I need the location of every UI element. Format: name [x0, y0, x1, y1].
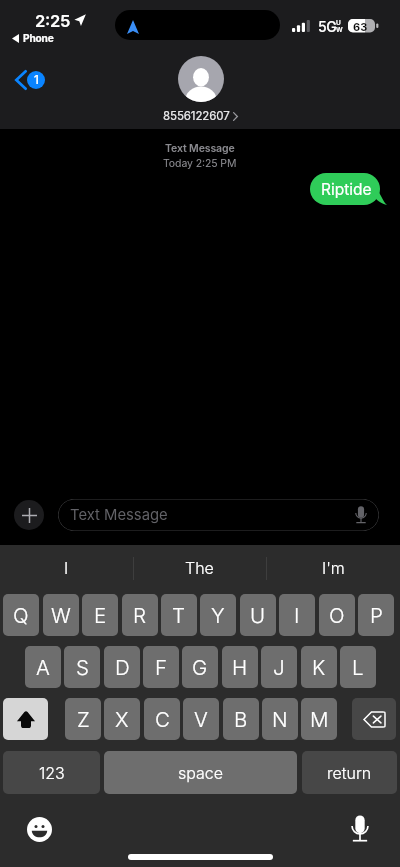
staticText: T	[172, 603, 186, 628]
staticText: Today 2:25 PM	[163, 157, 237, 170]
button[interactable]: U	[240, 594, 276, 636]
staticText: Phone	[23, 32, 54, 44]
button[interactable]: B	[223, 698, 259, 740]
button[interactable]: L	[340, 646, 376, 688]
staticText: W	[51, 603, 71, 628]
staticText: Q	[13, 603, 29, 628]
staticText: I'm	[322, 558, 345, 577]
staticText: space	[178, 763, 224, 782]
button[interactable]: D	[104, 646, 140, 688]
staticText: O	[329, 603, 345, 628]
staticText: Z	[77, 707, 90, 732]
button[interactable]: The	[133, 545, 266, 589]
button[interactable]: Dictation	[347, 816, 373, 842]
staticText: E	[94, 603, 107, 628]
button[interactable]: Shift	[3, 698, 48, 740]
button[interactable]: W	[43, 594, 79, 636]
staticText: 2:25	[35, 11, 70, 31]
staticText: B	[234, 707, 248, 732]
button[interactable]: space	[104, 751, 297, 794]
button[interactable]: K	[301, 646, 337, 688]
staticText: C	[155, 707, 170, 732]
staticText: U	[250, 603, 266, 628]
staticText: D	[115, 655, 130, 680]
button[interactable]: Back to Phone	[12, 32, 54, 44]
staticText: K	[312, 655, 326, 680]
button[interactable]: F	[143, 646, 179, 688]
staticText: Y	[211, 603, 225, 628]
staticText: 123	[39, 763, 65, 782]
button[interactable]: P	[358, 594, 394, 636]
staticText: N	[272, 707, 288, 732]
button[interactable]: 8556122607	[163, 56, 238, 123]
staticText: H	[232, 655, 248, 680]
staticText: R	[133, 603, 147, 628]
staticText: W	[336, 26, 343, 34]
button[interactable]: T	[161, 594, 197, 636]
button[interactable]: Add attachment	[14, 500, 44, 530]
staticText: The	[185, 558, 214, 577]
button[interactable]: E	[82, 594, 118, 636]
staticText: 8556122607	[163, 109, 230, 123]
button[interactable]: Riptide	[310, 173, 380, 205]
button[interactable]: Back, 1 unread	[15, 70, 45, 90]
button[interactable]: Text Message	[58, 499, 379, 531]
staticText: G	[192, 655, 208, 680]
staticText: Text Message	[70, 506, 168, 524]
staticText: 63	[353, 20, 368, 33]
button[interactable]: I	[0, 545, 133, 589]
staticText: Riptide	[321, 180, 372, 199]
staticText: M	[310, 707, 329, 732]
button[interactable]: R	[122, 594, 158, 636]
staticText: 1	[34, 73, 39, 87]
staticText: U	[336, 19, 341, 27]
staticText: return	[327, 763, 372, 782]
button[interactable]: S	[64, 646, 100, 688]
button[interactable]: Voice message	[349, 503, 373, 527]
button[interactable]: M	[301, 698, 337, 740]
staticText: L	[352, 655, 364, 680]
button[interactable]: Y	[200, 594, 236, 636]
button[interactable]: C	[144, 698, 180, 740]
button[interactable]: Z	[65, 698, 101, 740]
staticText: I	[64, 558, 69, 577]
button[interactable]: X	[104, 698, 140, 740]
staticText: X	[115, 707, 129, 732]
button[interactable]: I'm	[267, 545, 400, 589]
button[interactable]: return	[302, 751, 397, 794]
staticText: P	[370, 603, 383, 628]
button[interactable]: I	[279, 594, 315, 636]
staticText: S	[76, 655, 89, 680]
button[interactable]: N	[262, 698, 298, 740]
staticText: A	[36, 655, 50, 680]
button[interactable]: H	[222, 646, 258, 688]
button[interactable]: 123	[3, 751, 100, 794]
button[interactable]: V	[183, 698, 219, 740]
button[interactable]: Backspace	[352, 698, 396, 740]
button[interactable]: A	[25, 646, 61, 688]
button[interactable]: O	[319, 594, 355, 636]
staticText: J	[273, 655, 285, 680]
staticText: Text Message	[165, 142, 235, 155]
staticText: 5G	[318, 18, 337, 35]
button[interactable]: Emoji	[27, 817, 52, 842]
button[interactable]: J	[261, 646, 297, 688]
button[interactable]: Q	[3, 594, 39, 636]
staticText: I	[294, 603, 300, 628]
button[interactable]: G	[182, 646, 218, 688]
staticText: F	[155, 655, 168, 680]
staticText: V	[194, 707, 208, 732]
